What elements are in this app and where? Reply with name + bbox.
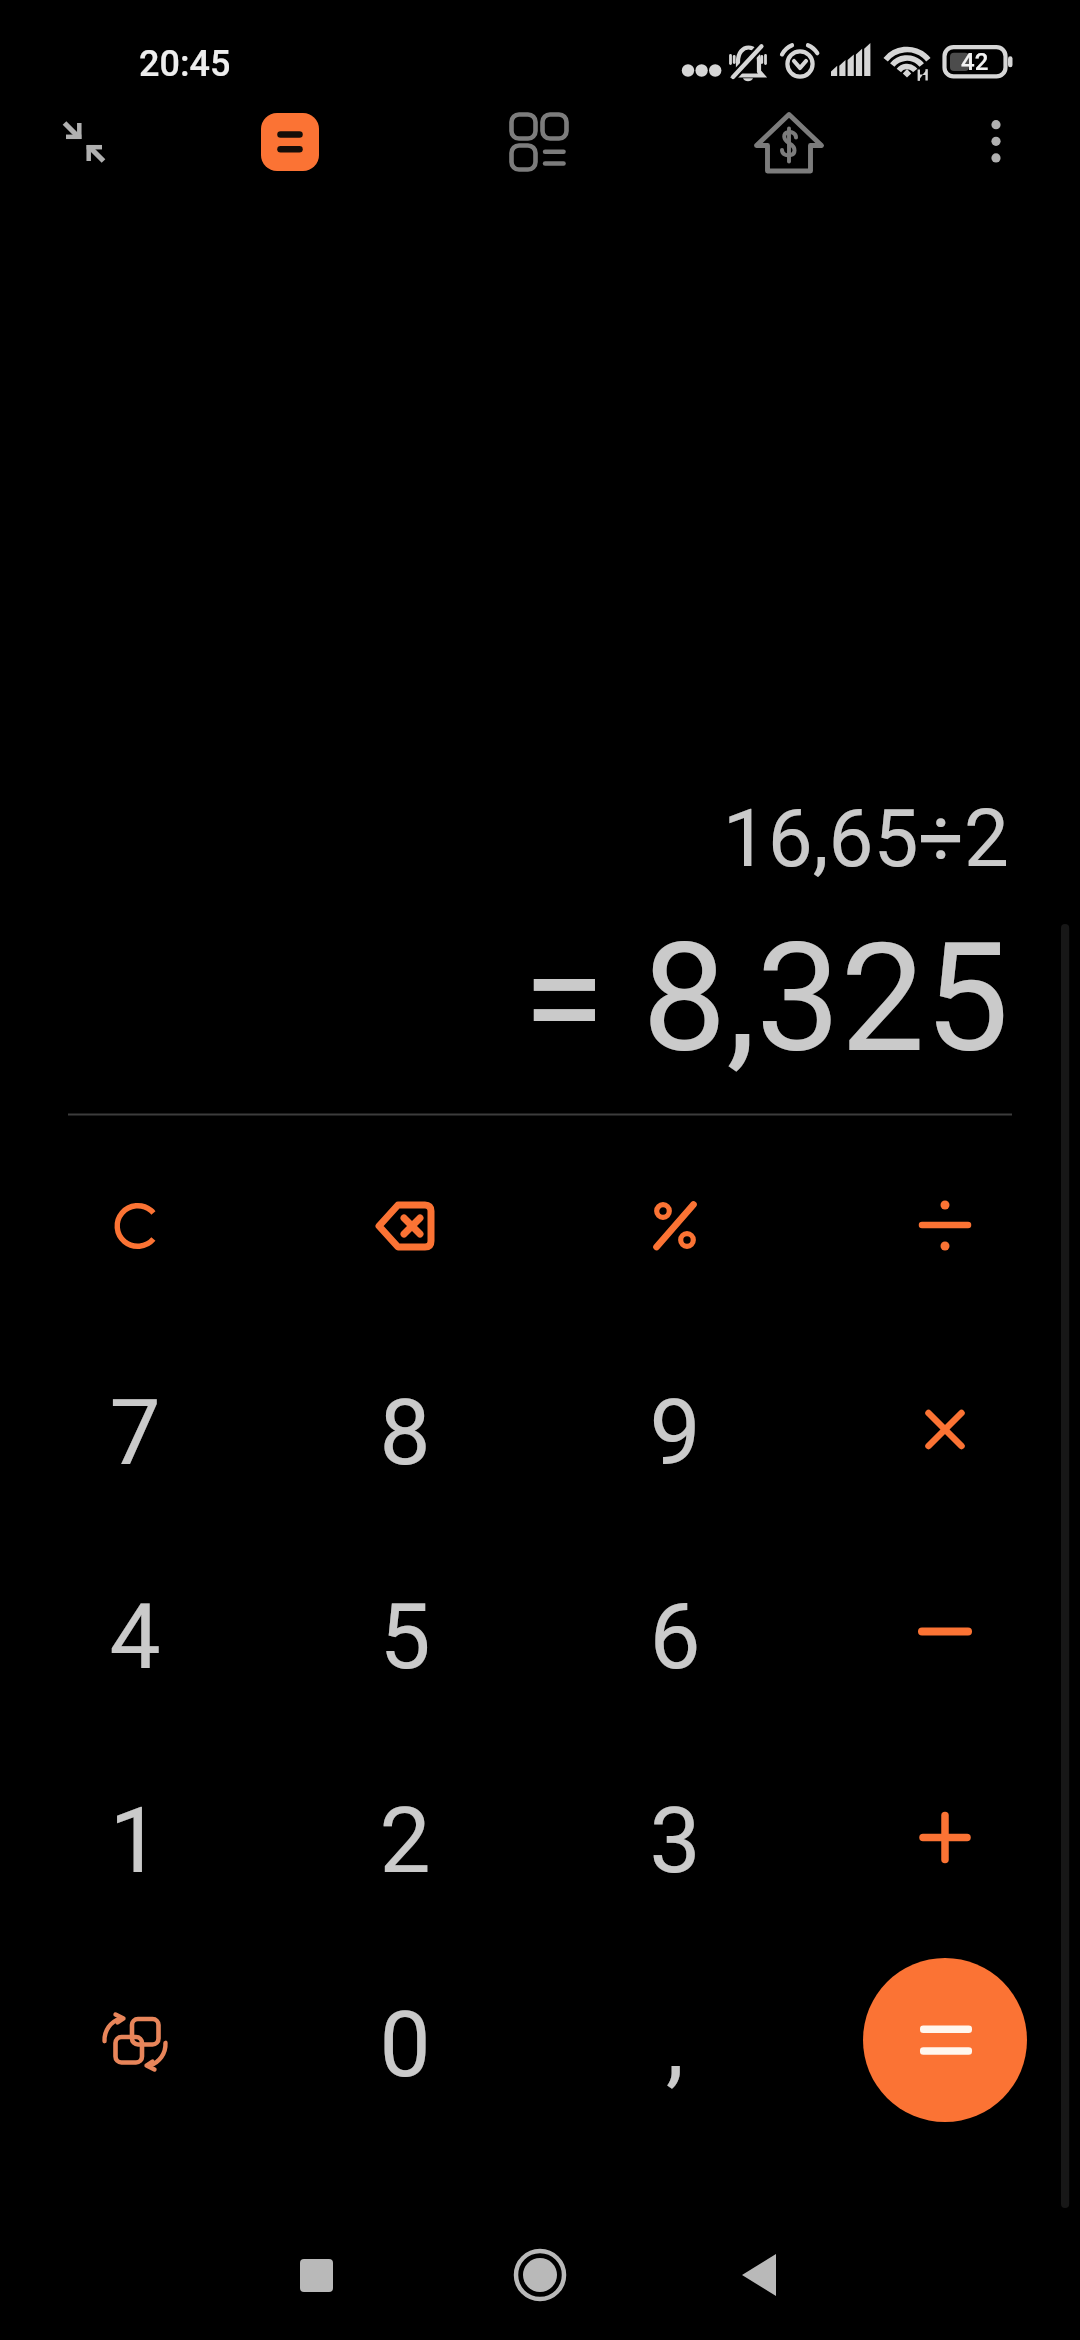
button[interactable]: Back — [711, 2227, 807, 2323]
button[interactable]: Calculator — [261, 113, 319, 171]
button[interactable]: 8 — [275, 1333, 535, 1533]
staticText: 16,65÷2 — [0, 792, 1009, 886]
button[interactable]: 2 — [275, 1741, 535, 1941]
staticText: 2 — [379, 1788, 431, 1895]
staticText: 20:45 — [139, 43, 231, 85]
button[interactable]: 5 — [275, 1537, 535, 1737]
staticText: , — [666, 1992, 684, 2099]
button[interactable]: Clear — [5, 1126, 265, 1326]
staticText: 42 — [961, 48, 989, 76]
button[interactable]: Percent — [545, 1126, 805, 1326]
staticText: 6 — [649, 1584, 701, 1691]
button[interactable]: Collapse — [36, 94, 132, 190]
button[interactable]: More options — [947, 94, 1043, 190]
button[interactable]: 0 — [275, 1945, 535, 2145]
button[interactable]: 3 — [545, 1741, 805, 1941]
staticText: 9 — [649, 1380, 701, 1487]
button[interactable]: Home — [492, 2227, 588, 2323]
button[interactable]: 6 — [545, 1537, 805, 1737]
button[interactable]: Divide — [815, 1126, 1075, 1326]
staticText: 0 — [379, 1992, 431, 2099]
button[interactable]: Plus — [815, 1738, 1075, 1938]
staticText: 7 — [109, 1380, 161, 1487]
button[interactable]: Mortgage — [745, 95, 841, 191]
button[interactable]: Minus — [815, 1534, 1075, 1734]
staticText: = 8,325 — [0, 911, 1009, 1087]
button[interactable]: 1 — [5, 1741, 265, 1941]
staticText: 3 — [649, 1788, 701, 1895]
button[interactable]: 7 — [5, 1333, 265, 1533]
button[interactable]: Converter — [491, 94, 587, 190]
button[interactable]: Multiply — [815, 1330, 1075, 1530]
button[interactable]: 4 — [5, 1537, 265, 1737]
staticText: 8 — [379, 1380, 431, 1487]
button[interactable]: 9 — [545, 1333, 805, 1533]
button[interactable]: Backspace — [275, 1126, 535, 1326]
button[interactable]: Convert — [5, 1942, 265, 2142]
button[interactable]: Equals — [863, 1958, 1027, 2122]
staticText: 4 — [109, 1584, 161, 1691]
staticText: 5 — [379, 1584, 431, 1691]
button[interactable]: , — [545, 1945, 805, 2145]
button[interactable]: Recent apps — [268, 2227, 364, 2323]
staticText: 1 — [109, 1788, 161, 1895]
